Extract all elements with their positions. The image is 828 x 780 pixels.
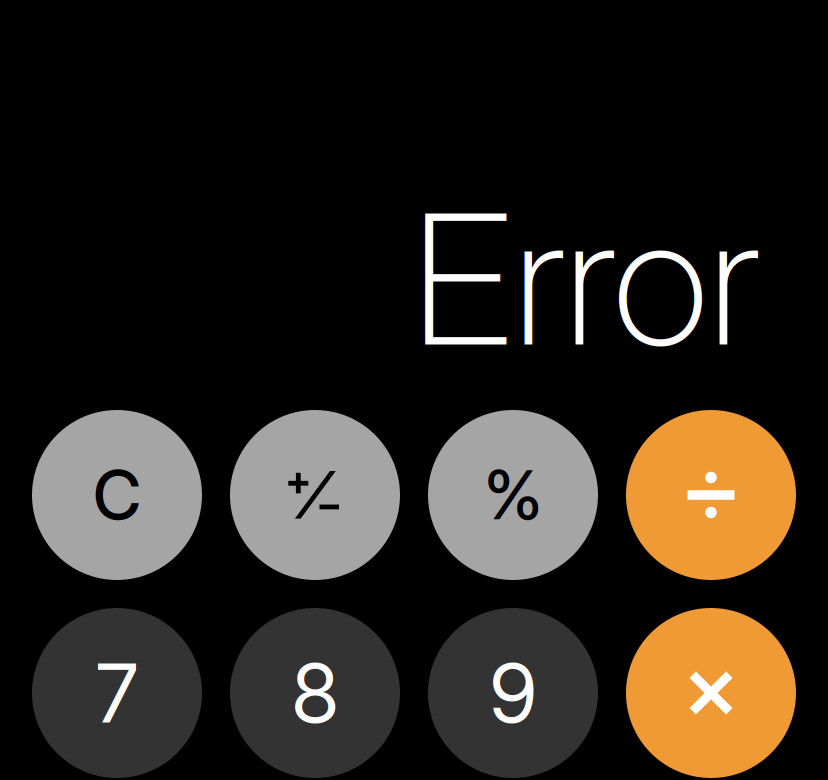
button[interactable]: 7	[32, 608, 202, 778]
button[interactable]: %	[428, 410, 598, 580]
button[interactable]: C	[32, 410, 202, 580]
button[interactable]: 8	[230, 608, 400, 778]
staticText: 7	[96, 644, 138, 742]
button[interactable]: Plus minus	[230, 410, 400, 580]
staticText: %	[484, 455, 542, 535]
staticText: C	[93, 455, 141, 535]
button[interactable]: Divide	[626, 410, 796, 580]
staticText: Error	[411, 170, 759, 388]
staticText: 9	[489, 644, 536, 742]
button[interactable]: 9	[428, 608, 598, 778]
button[interactable]: Multiply	[626, 608, 796, 778]
staticText: 8	[291, 644, 338, 742]
